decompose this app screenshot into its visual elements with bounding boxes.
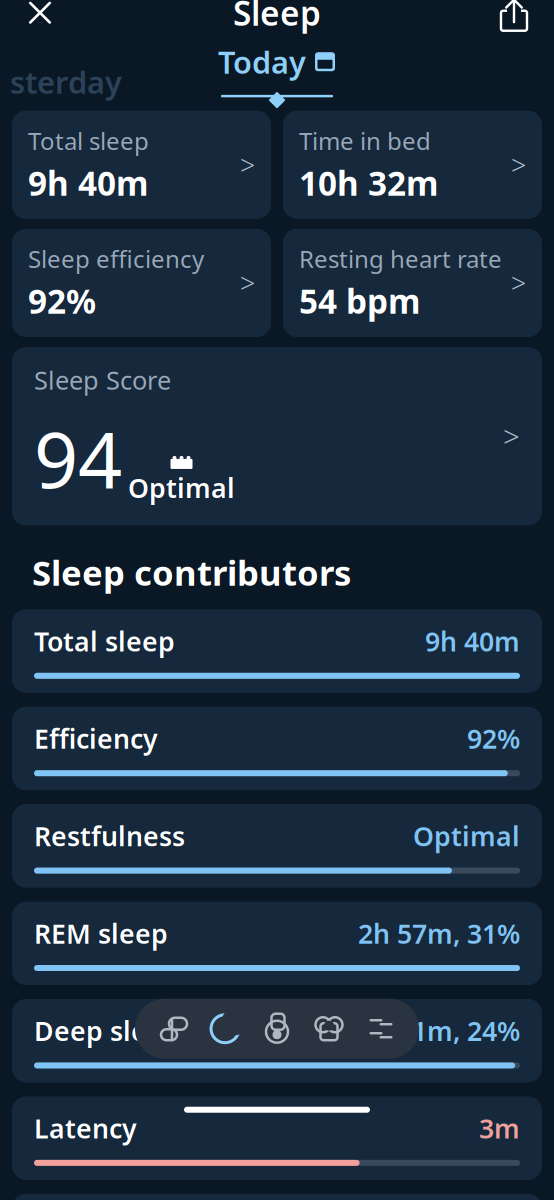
staticText: Sleep contributors [32, 549, 351, 595]
button[interactable]: Sleep efficiency [12, 229, 271, 337]
button[interactable]: Sleep Score [12, 347, 542, 525]
button[interactable]: Total sleep [12, 609, 542, 693]
staticText: Today [218, 41, 306, 82]
staticText: 92% [467, 721, 520, 756]
button[interactable]: Close [18, 0, 62, 35]
staticText: Resting heart rate [299, 243, 502, 275]
button[interactable]: Readiness [157, 1013, 189, 1045]
button[interactable]: Restfulness [12, 804, 542, 888]
staticText: 9h 40m [28, 161, 149, 205]
button[interactable]: Resilience [365, 1013, 397, 1045]
staticText: > [240, 147, 255, 182]
staticText: > [240, 265, 255, 301]
button[interactable]: Sleep [209, 1013, 241, 1045]
button[interactable]: Share [492, 0, 536, 35]
staticText: Deep sleep [34, 1013, 180, 1048]
button[interactable]: Heart health [313, 1013, 345, 1045]
button[interactable]: Latency [12, 1096, 542, 1180]
button[interactable]: Today [218, 41, 336, 90]
staticText: Efficiency [34, 721, 158, 756]
staticText: Sleep efficiency [28, 243, 204, 275]
button[interactable]: sterday [4, 61, 128, 102]
button[interactable]: REM sleep [12, 902, 542, 985]
staticText: Sleep [233, 0, 321, 35]
staticText: 3m [479, 1110, 520, 1146]
staticText: Total sleep [28, 125, 149, 157]
staticText: 54 bpm [299, 279, 421, 323]
staticText: 2h 57m, 31% [358, 916, 520, 951]
button[interactable]: Timing [12, 1194, 542, 1200]
staticText: > [511, 265, 526, 301]
staticText: Optimal [128, 470, 235, 505]
staticText: Total sleep [34, 623, 175, 659]
staticText: Optimal [413, 818, 520, 854]
staticText: REM sleep [34, 916, 168, 951]
button[interactable]: Activity [261, 1013, 293, 1045]
staticText: > [511, 147, 526, 182]
staticText: sterday [10, 61, 122, 102]
staticText: Time in bed [299, 125, 431, 157]
staticText: 94 [34, 407, 122, 509]
staticText: 92% [28, 279, 96, 323]
staticText: Sleep Score [34, 363, 171, 397]
staticText: 10h 32m [299, 161, 439, 205]
staticText: 9h 40m [425, 623, 520, 659]
staticText: Latency [34, 1110, 137, 1146]
button[interactable]: Efficiency [12, 707, 542, 790]
button[interactable]: Total sleep [12, 111, 271, 219]
button[interactable]: Resting heart rate [283, 229, 542, 337]
staticText: 2h 21m, 24% [358, 1013, 520, 1048]
staticText: > [503, 417, 520, 456]
button[interactable]: Deep sleep [12, 999, 542, 1082]
staticText: Restfulness [34, 818, 185, 854]
button[interactable]: Time in bed [283, 111, 542, 219]
